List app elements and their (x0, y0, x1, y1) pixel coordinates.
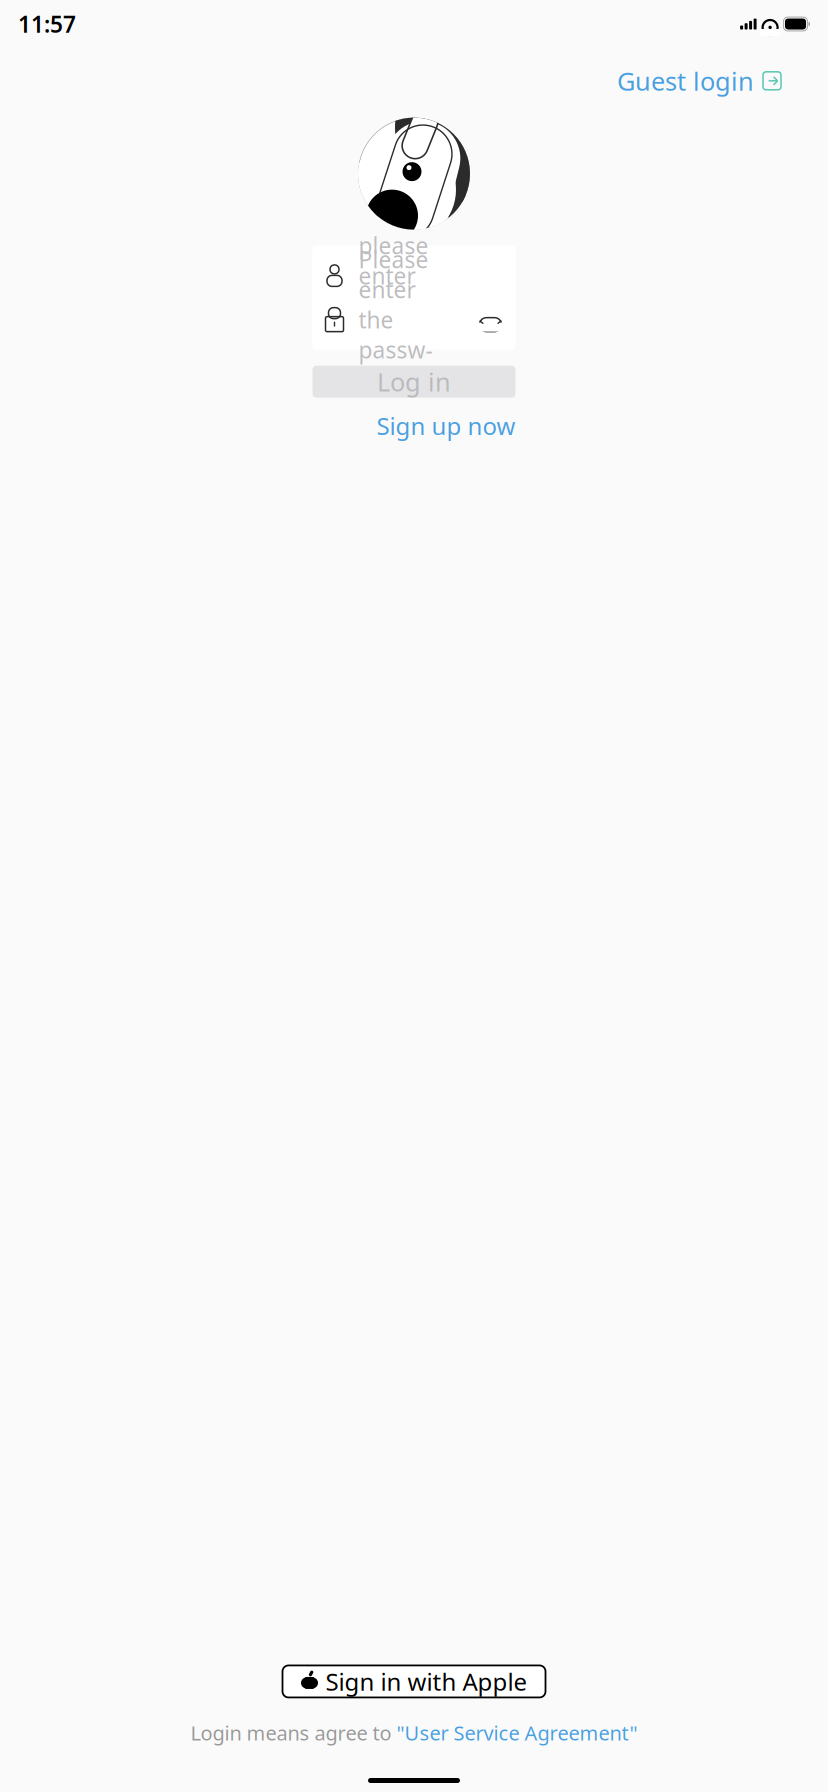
button[interactable]: Sign in with Apple (282, 1665, 545, 1697)
staticText: Login means agree to (190, 1719, 396, 1746)
button[interactable]: Guest login (609, 58, 790, 104)
staticText: Log in (377, 365, 451, 398)
button[interactable]: Log in (312, 366, 515, 398)
staticText: Sign up now (376, 410, 515, 441)
button[interactable]: Please enter the password (312, 298, 515, 342)
button[interactable]: "User Service Agreement" (396, 1719, 637, 1746)
button[interactable]: please enter account (312, 254, 515, 298)
staticText: "User Service Agreement" (396, 1719, 637, 1746)
staticText: Please enter the password (358, 244, 432, 395)
button[interactable]: Sign up now (376, 406, 515, 445)
staticText: please enter account (358, 230, 443, 321)
staticText: Sign in with Apple (325, 1665, 527, 1697)
staticText: 11:57 (18, 9, 76, 39)
staticText: Guest login (617, 64, 754, 98)
